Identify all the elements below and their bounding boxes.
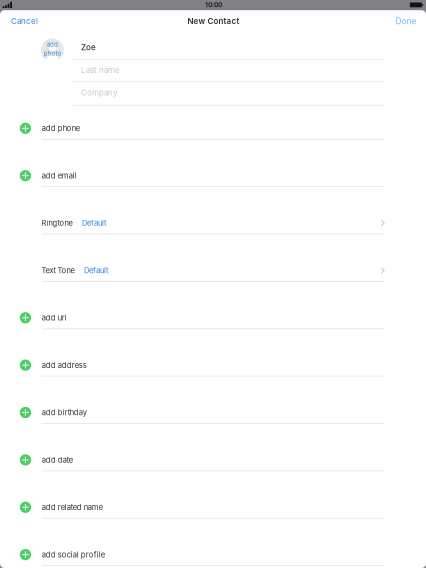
- button[interactable]: add address: [0, 10, 426, 568]
- staticText: Text Tone: [42, 266, 75, 275]
- staticText: Zoe: [81, 42, 96, 52]
- staticText: New Contact: [187, 16, 239, 26]
- button[interactable]: Ringtone: [0, 10, 426, 568]
- staticText: add url: [42, 313, 67, 322]
- button[interactable]: add date: [0, 10, 426, 568]
- button[interactable]: Add photo: [41, 38, 64, 61]
- staticText: add birthday: [42, 408, 87, 417]
- button[interactable]: add url: [0, 10, 426, 568]
- button[interactable]: add birthday: [0, 10, 426, 568]
- staticText: add email: [42, 171, 77, 180]
- staticText: add phone: [42, 124, 80, 133]
- staticText: Ringtone: [42, 218, 73, 228]
- staticText: Done: [395, 16, 416, 26]
- staticText: photo: [43, 50, 61, 57]
- button[interactable]: Done: [0, 10, 426, 32]
- button[interactable]: add phone: [0, 10, 426, 568]
- staticText: add related name: [42, 503, 103, 512]
- staticText: Company: [81, 88, 117, 97]
- button[interactable]: add related name: [0, 10, 426, 568]
- button[interactable]: Text Tone: [0, 10, 426, 568]
- staticText: add social profile: [42, 550, 105, 559]
- staticText: Cancel: [11, 16, 38, 26]
- staticText: add: [47, 41, 58, 48]
- button[interactable]: Cancel: [0, 10, 426, 31]
- button[interactable]: add social profile: [0, 10, 426, 568]
- staticText: Default: [84, 266, 108, 275]
- staticText: Default: [82, 218, 106, 228]
- staticText: Last name: [81, 65, 120, 75]
- staticText: add date: [42, 455, 73, 464]
- staticText: add address: [42, 361, 87, 370]
- button[interactable]: add email: [0, 10, 426, 568]
- staticText: 10:00: [205, 1, 222, 9]
